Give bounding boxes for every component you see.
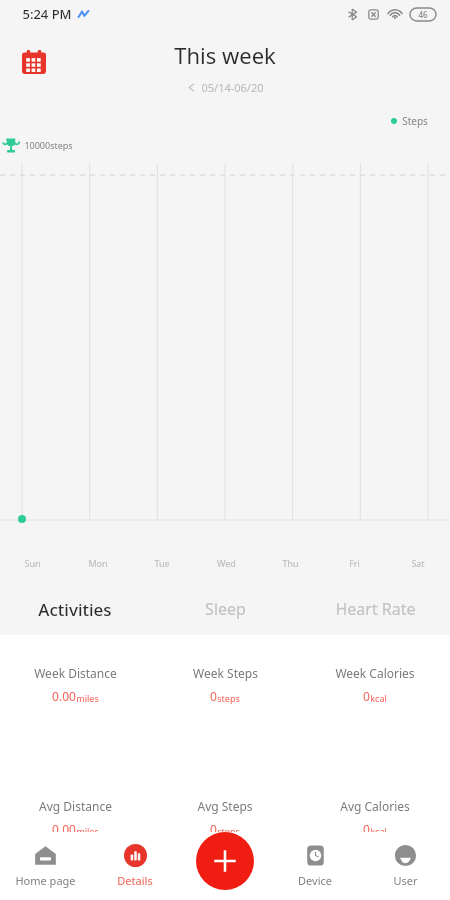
staticText: Details xyxy=(117,873,153,888)
staticText: Avg Distance xyxy=(39,798,112,814)
staticText: Mon xyxy=(88,557,108,569)
staticText: 0.00 xyxy=(52,821,76,837)
button[interactable]: Week Steps xyxy=(150,663,300,706)
staticText: Steps xyxy=(402,114,428,128)
staticText: This week xyxy=(174,40,276,70)
staticText: Tue xyxy=(154,557,170,569)
button[interactable]: Add activity xyxy=(196,832,254,890)
staticText: 5:24 PM xyxy=(22,5,72,23)
staticText: Week Distance xyxy=(34,665,117,681)
staticText: miles xyxy=(76,825,99,837)
button[interactable]: Calendar xyxy=(14,42,54,82)
staticText: 0 xyxy=(210,688,217,704)
staticText: 46 xyxy=(418,9,428,20)
button[interactable]: Avg Distance xyxy=(0,796,150,839)
staticText: 05/14-06/20 xyxy=(201,80,264,95)
staticText: Home page xyxy=(15,873,76,888)
button[interactable]: Device xyxy=(270,832,360,900)
staticText: 10000steps xyxy=(24,139,73,151)
staticText: kcal xyxy=(370,825,387,837)
staticText: Thu xyxy=(282,557,299,569)
staticText: 0 xyxy=(363,688,370,704)
staticText: Sleep xyxy=(205,598,246,620)
staticText: miles xyxy=(76,692,99,704)
staticText: Activities xyxy=(38,598,112,621)
staticText: User xyxy=(393,873,418,888)
button[interactable]: Avg Calories xyxy=(300,796,450,839)
button[interactable]: User xyxy=(360,832,450,900)
staticText: 0.00 xyxy=(52,688,76,704)
staticText: steps xyxy=(217,825,240,837)
staticText: Week Calories xyxy=(335,665,415,681)
staticText: 0 xyxy=(210,821,217,837)
staticText: Avg Steps xyxy=(197,798,253,814)
button[interactable]: 05/14-06/20 xyxy=(187,80,264,95)
staticText: Fri xyxy=(349,557,360,569)
button[interactable]: Avg Steps xyxy=(150,796,300,839)
button[interactable]: Sleep xyxy=(150,583,300,635)
staticText: Week Steps xyxy=(193,665,258,681)
button[interactable]: Heart Rate xyxy=(300,583,450,635)
button[interactable]: Activities xyxy=(0,583,150,635)
staticText: Wed xyxy=(217,557,236,569)
staticText: steps xyxy=(217,692,240,704)
button[interactable]: Details xyxy=(90,832,180,900)
button[interactable]: Week Distance xyxy=(0,663,150,706)
staticText: 0 xyxy=(363,821,370,837)
staticText: Device xyxy=(298,873,332,888)
button[interactable]: Home page xyxy=(0,832,90,900)
staticText: Avg Calories xyxy=(340,798,410,814)
staticText: Sun xyxy=(24,557,41,569)
button[interactable]: Week Calories xyxy=(300,663,450,706)
staticText: kcal xyxy=(370,692,387,704)
staticText: Sat xyxy=(411,557,425,569)
staticText: Heart Rate xyxy=(335,598,416,620)
